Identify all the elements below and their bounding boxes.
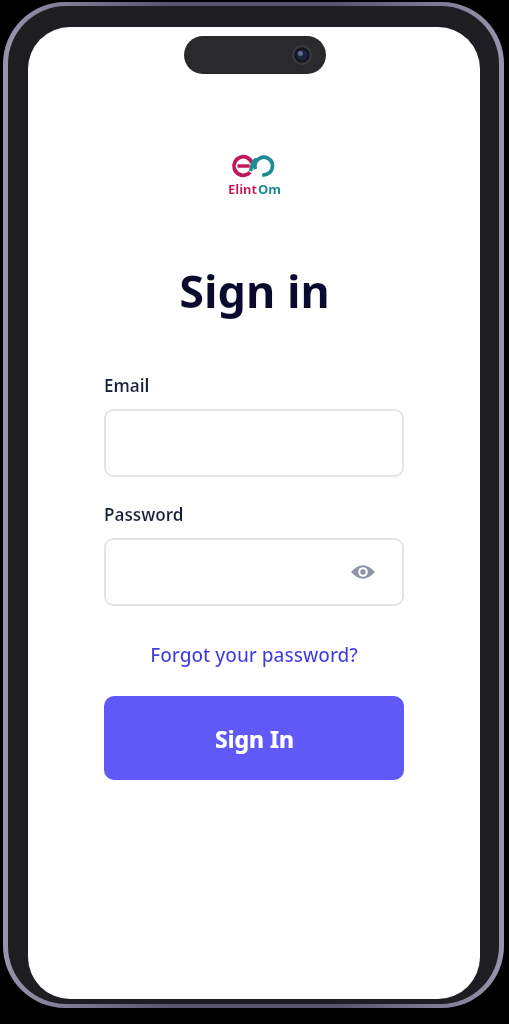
- staticText: Elint: [228, 180, 258, 198]
- button[interactable]: Forgot your password?: [144, 639, 364, 671]
- staticText: Om: [258, 180, 281, 198]
- staticText: Password: [104, 503, 184, 526]
- button[interactable]: Sign In: [104, 696, 404, 780]
- staticText: Forgot your password?: [150, 642, 358, 668]
- button[interactable]: Email input field: [104, 409, 404, 477]
- button[interactable]: Password input field: [104, 538, 404, 606]
- staticText: Sign in: [179, 260, 330, 321]
- staticText: Sign In: [215, 723, 294, 754]
- button[interactable]: Show password: [346, 555, 380, 589]
- staticText: Email: [104, 374, 150, 397]
